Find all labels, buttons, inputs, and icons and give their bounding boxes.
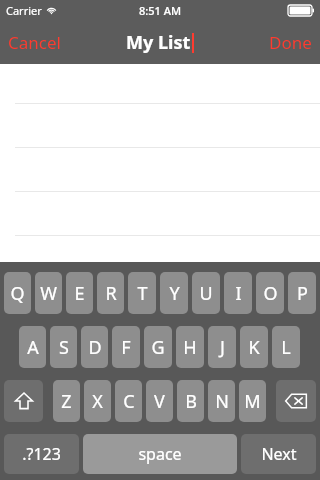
button[interactable]: S: [50, 326, 77, 368]
staticText: 8:51 AM: [139, 3, 182, 18]
button[interactable]: Backspace: [276, 380, 316, 422]
staticText: space: [138, 443, 182, 465]
button[interactable]: I: [224, 272, 252, 314]
staticText: S: [59, 335, 69, 360]
staticText: Z: [61, 389, 72, 414]
staticText: My List: [126, 30, 191, 55]
staticText: A: [27, 335, 39, 360]
button[interactable]: W: [35, 272, 62, 314]
button[interactable]: Shift: [4, 380, 43, 422]
button[interactable]: R: [97, 272, 124, 314]
button[interactable]: O: [256, 272, 284, 314]
staticText: .?123: [22, 443, 61, 465]
button[interactable]: K: [240, 326, 268, 368]
button[interactable]: E: [66, 272, 93, 314]
button[interactable]: Q: [4, 272, 31, 314]
staticText: Cancel: [8, 31, 61, 54]
button[interactable]: D: [81, 326, 108, 368]
button[interactable]: J: [208, 326, 236, 368]
button[interactable]: L: [272, 326, 300, 368]
staticText: T: [137, 281, 148, 306]
button[interactable]: P: [288, 272, 316, 314]
button[interactable]: U: [192, 272, 220, 314]
staticText: L: [281, 335, 291, 360]
staticText: U: [199, 281, 213, 306]
staticText: D: [88, 335, 102, 360]
staticText: Next: [261, 443, 297, 465]
staticText: P: [297, 281, 308, 306]
button[interactable]: A: [19, 326, 46, 368]
button[interactable]: Cancel: [8, 20, 61, 64]
staticText: J: [220, 335, 225, 360]
button[interactable]: G: [144, 326, 172, 368]
staticText: R: [105, 281, 117, 306]
button[interactable]: M: [239, 380, 266, 422]
button[interactable]: Next: [241, 434, 316, 474]
button[interactable]: H: [176, 326, 204, 368]
staticText: Done: [269, 31, 312, 54]
staticText: Carrier: [6, 3, 42, 18]
staticText: K: [248, 335, 260, 360]
staticText: Q: [10, 281, 25, 306]
button[interactable]: V: [146, 380, 173, 422]
button[interactable]: Y: [160, 272, 188, 314]
button[interactable]: Done: [269, 20, 312, 64]
staticText: O: [263, 281, 278, 306]
staticText: Y: [169, 281, 180, 306]
staticText: I: [235, 281, 242, 306]
button[interactable]: X: [84, 380, 111, 422]
button[interactable]: space: [83, 434, 237, 474]
staticText: V: [154, 389, 165, 414]
button[interactable]: N: [208, 380, 235, 422]
staticText: W: [40, 281, 57, 306]
staticText: E: [74, 281, 85, 306]
button[interactable]: B: [177, 380, 204, 422]
staticText: X: [92, 389, 103, 414]
button[interactable]: C: [115, 380, 142, 422]
button[interactable]: .?123: [4, 434, 79, 474]
staticText: F: [121, 335, 131, 360]
staticText: M: [244, 389, 261, 414]
button[interactable]: Z: [53, 380, 80, 422]
staticText: H: [183, 335, 197, 360]
button[interactable]: F: [112, 326, 140, 368]
staticText: C: [123, 389, 135, 414]
button[interactable]: T: [128, 272, 156, 314]
staticText: N: [215, 389, 229, 414]
staticText: G: [151, 335, 165, 360]
staticText: B: [185, 389, 197, 414]
